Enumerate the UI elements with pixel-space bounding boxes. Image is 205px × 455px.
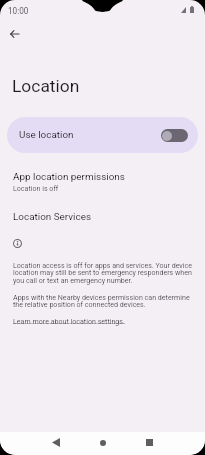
staticText: 10:00 xyxy=(8,6,29,16)
button[interactable]: Back xyxy=(44,432,68,454)
staticText: Use location xyxy=(19,129,74,141)
staticText: Location is off xyxy=(13,184,59,192)
button[interactable]: Recent apps xyxy=(137,432,161,454)
staticText: App location permissions xyxy=(13,171,125,183)
staticText: Location access is off for apps and serv… xyxy=(13,261,197,285)
staticText: Location xyxy=(12,76,80,96)
staticText: Apps with the Nearby devices permission … xyxy=(13,293,197,309)
button[interactable]: Use location xyxy=(7,117,198,153)
button[interactable]: Location Services xyxy=(0,208,205,228)
button[interactable]: Home xyxy=(91,432,115,454)
button[interactable]: App location permissions xyxy=(0,168,205,196)
button[interactable]: Navigate up xyxy=(2,22,26,46)
button[interactable]: Learn more about location settings. xyxy=(13,317,125,325)
other: Use location toggle xyxy=(161,129,188,142)
staticText: Location Services xyxy=(13,211,91,223)
